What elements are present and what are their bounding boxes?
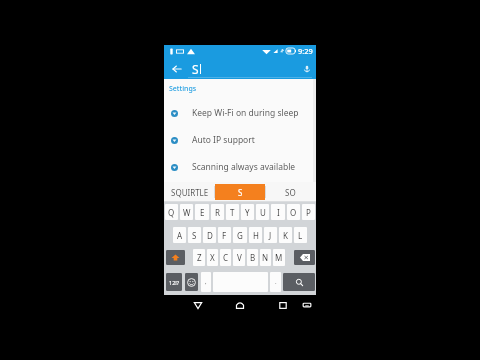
- button[interactable]: K: [279, 227, 292, 243]
- button[interactable]: J: [264, 227, 277, 243]
- staticText: H: [253, 230, 259, 241]
- staticText: Keep Wi-Fi on during sleep: [192, 107, 299, 119]
- button[interactable]: Search: [283, 273, 315, 291]
- staticText: O: [290, 207, 297, 218]
- button[interactable]: E: [195, 204, 209, 220]
- button[interactable]: Keep Wi-Fi on during sleep: [164, 100, 316, 126]
- button[interactable]: Auto IP support: [164, 127, 316, 153]
- staticText: Settings: [169, 84, 197, 94]
- button[interactable]: SQUIRTLE: [164, 182, 215, 202]
- button[interactable]: Recent apps: [275, 295, 291, 315]
- staticText: Z: [197, 252, 202, 263]
- button[interactable]: ,: [201, 272, 211, 292]
- staticText: Auto IP support: [192, 134, 255, 146]
- button[interactable]: H: [249, 227, 262, 243]
- staticText: Q: [168, 207, 175, 218]
- staticText: A: [177, 230, 183, 241]
- button[interactable]: .: [270, 272, 281, 292]
- button[interactable]: Home: [232, 295, 248, 315]
- button[interactable]: D: [203, 227, 216, 243]
- button[interactable]: L: [294, 227, 307, 243]
- staticText: L: [298, 230, 303, 241]
- button[interactable]: B: [247, 249, 258, 266]
- button[interactable]: Q: [165, 204, 178, 220]
- staticText: SO: [285, 187, 296, 198]
- button[interactable]: Backspace: [294, 250, 315, 265]
- button[interactable]: Emoji: [185, 273, 198, 291]
- staticText: X: [210, 252, 215, 263]
- button[interactable]: T: [226, 204, 239, 220]
- staticText: B: [250, 252, 256, 263]
- staticText: S: [192, 230, 197, 241]
- button[interactable]: O: [287, 204, 300, 220]
- button[interactable]: N: [260, 249, 271, 266]
- button[interactable]: V: [233, 249, 245, 266]
- button[interactable]: M: [273, 249, 285, 266]
- staticText: D: [207, 230, 213, 241]
- staticText: Y: [245, 207, 250, 218]
- button[interactable]: Scanning always available: [164, 154, 316, 180]
- staticText: W: [183, 207, 191, 218]
- button[interactable]: P: [302, 204, 315, 220]
- button[interactable]: Navigate up: [169, 61, 184, 76]
- button[interactable]: Voice search: [300, 62, 314, 76]
- staticText: N: [262, 252, 269, 263]
- staticText: F: [222, 230, 227, 241]
- button[interactable]: A: [173, 227, 186, 243]
- button[interactable]: W: [180, 204, 193, 220]
- staticText: U: [260, 207, 266, 218]
- button[interactable]: Y: [241, 204, 254, 220]
- button[interactable]: Z: [193, 249, 205, 266]
- button[interactable]: Hide keyboard: [299, 295, 315, 315]
- staticText: I: [277, 207, 280, 218]
- staticText: S: [238, 187, 243, 198]
- button[interactable]: S: [215, 184, 265, 200]
- staticText: C: [223, 252, 229, 263]
- button[interactable]: R: [211, 204, 224, 220]
- staticText: K: [283, 230, 288, 241]
- staticText: P: [306, 207, 311, 218]
- staticText: 12!?: [169, 279, 180, 286]
- staticText: 9:29: [298, 46, 313, 56]
- staticText: SQUIRTLE: [171, 187, 209, 198]
- staticText: S: [192, 61, 199, 77]
- staticText: Scanning always available: [192, 161, 296, 173]
- button[interactable]: C: [220, 249, 231, 266]
- button[interactable]: I: [271, 204, 285, 220]
- button[interactable]: Shift: [166, 250, 185, 265]
- staticText: R: [215, 207, 220, 218]
- button[interactable]: X: [207, 249, 218, 266]
- staticText: ,: [205, 278, 207, 286]
- button[interactable]: Back: [190, 295, 206, 315]
- button[interactable]: Symbols: [166, 273, 182, 291]
- staticText: J: [269, 230, 272, 241]
- staticText: G: [237, 230, 243, 241]
- button[interactable]: F: [218, 227, 231, 243]
- button[interactable]: U: [256, 204, 269, 220]
- staticText: .: [275, 278, 277, 286]
- staticText: M: [275, 252, 283, 263]
- button[interactable]: SO: [265, 182, 316, 202]
- staticText: E: [200, 207, 205, 218]
- staticText: T: [230, 207, 235, 218]
- button[interactable]: G: [233, 227, 247, 243]
- button[interactable]: S: [188, 227, 201, 243]
- staticText: V: [237, 252, 242, 263]
